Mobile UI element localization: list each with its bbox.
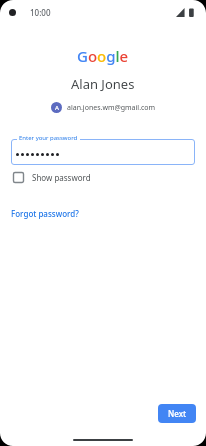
staticText: alan.jones.wm@gmail.com — [67, 103, 156, 113]
staticText: Forgot password? — [11, 208, 79, 219]
staticText: Enter your password — [19, 134, 78, 142]
staticText: A — [55, 104, 59, 112]
button[interactable]: Show password — [11, 170, 93, 185]
button[interactable]: A — [50, 101, 157, 114]
other: Home gesture bar — [73, 439, 133, 441]
button[interactable]: Forgot password? — [9, 206, 81, 221]
staticText: Google — [77, 46, 129, 66]
staticText: Alan Jones — [71, 75, 135, 93]
staticText: Show password — [32, 172, 91, 183]
button[interactable]: Next — [158, 404, 196, 423]
staticText: Next — [168, 408, 187, 419]
button[interactable] — [11, 139, 195, 165]
staticText: 10:00 — [30, 7, 51, 18]
